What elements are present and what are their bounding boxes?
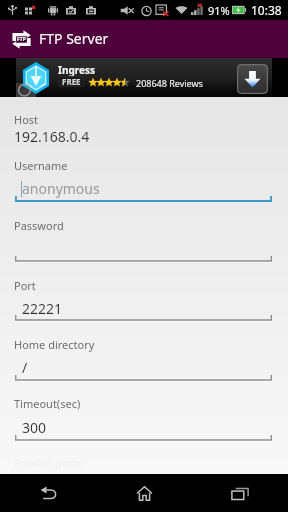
staticText: Home directory: [14, 337, 95, 352]
staticText: 22221: [22, 299, 63, 318]
staticText: 208648 Reviews: [136, 77, 203, 89]
button[interactable]: Home: [96, 474, 192, 512]
staticText: 300: [22, 418, 47, 437]
staticText: 91%: [208, 3, 230, 18]
staticText: 10:38: [251, 2, 282, 18]
staticText: /: [22, 358, 28, 377]
staticText: Timeout(sec): [14, 396, 81, 411]
button[interactable]: Username: [0, 158, 288, 173]
button[interactable]: Timeout(sec): [0, 396, 288, 411]
button[interactable]: Ingress: [16, 58, 272, 97]
button[interactable]: Password: [0, 218, 288, 233]
staticText: Ingress: [58, 63, 95, 77]
button[interactable]: Back: [0, 474, 96, 512]
button[interactable]: Install Ingress: [237, 64, 268, 94]
staticText: Host: [14, 112, 39, 127]
button[interactable]: Host: [0, 112, 288, 127]
staticText: Port: [14, 278, 36, 293]
staticText: FTP Server: [39, 29, 109, 48]
button[interactable]: Recent apps: [192, 474, 288, 512]
button[interactable]: Port: [0, 278, 288, 293]
staticText: Password: [14, 218, 64, 233]
staticText: FREE: [62, 76, 81, 87]
staticText: FTP: [17, 36, 26, 43]
button[interactable]: Home directory: [0, 337, 288, 352]
staticText: 192.168.0.4: [14, 127, 90, 146]
staticText: Username: [14, 158, 68, 173]
staticText: anonymous: [22, 179, 100, 198]
